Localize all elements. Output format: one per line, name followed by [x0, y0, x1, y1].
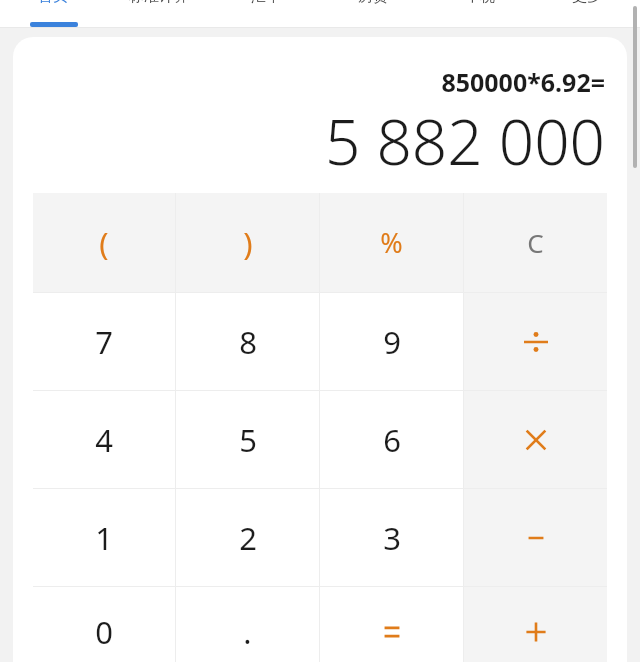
button[interactable]: 汇率 — [212, 0, 319, 28]
staticText: 6 — [383, 419, 401, 461]
button[interactable]: 9 — [320, 293, 463, 390]
staticText: 850000*6.92= — [441, 65, 605, 99]
staticText: 0 — [95, 611, 113, 653]
button[interactable]: ) — [176, 193, 319, 292]
button[interactable]: 标准计算 — [106, 0, 212, 28]
button[interactable]: % — [320, 193, 463, 292]
staticText: 1 — [95, 517, 113, 559]
staticText: 首页 — [38, 0, 68, 6]
staticText: 5 — [239, 419, 257, 461]
staticText: C — [527, 225, 544, 260]
button[interactable]: 2 — [176, 489, 319, 586]
button[interactable]: 1 — [33, 489, 175, 586]
staticText: . — [243, 611, 252, 653]
button[interactable]: Divide — [464, 293, 607, 390]
staticText: 7 — [95, 321, 113, 363]
staticText: 个税 — [465, 0, 495, 6]
button[interactable]: 4 — [33, 391, 175, 488]
button[interactable]: Subtract — [464, 489, 607, 586]
staticText: 标准计算 — [129, 0, 189, 6]
staticText: 8 — [239, 321, 257, 363]
button[interactable]: Equals — [320, 587, 463, 662]
button[interactable]: 7 — [33, 293, 175, 390]
button[interactable]: ( — [33, 193, 175, 292]
button[interactable]: . — [176, 587, 319, 662]
staticText: 汇率 — [251, 0, 281, 6]
button[interactable]: 8 — [176, 293, 319, 390]
staticText: ( — [99, 222, 109, 264]
staticText: % — [380, 224, 403, 261]
button[interactable]: C — [464, 193, 607, 292]
button[interactable]: 首页 — [0, 0, 106, 28]
staticText: 4 — [95, 419, 113, 461]
staticText: 9 — [383, 321, 401, 363]
staticText: 5 882 000 — [324, 99, 605, 183]
staticText: ) — [243, 222, 253, 264]
button[interactable]: 房贷 — [319, 0, 426, 28]
button[interactable]: 0 — [33, 587, 175, 662]
staticText: 房贷 — [358, 0, 388, 6]
staticText: 3 — [383, 517, 401, 559]
button[interactable]: 3 — [320, 489, 463, 586]
button[interactable]: 6 — [320, 391, 463, 488]
button[interactable]: Add — [464, 587, 607, 662]
button[interactable]: Multiply — [464, 391, 607, 488]
staticText: 更多 — [572, 0, 602, 6]
staticText: 2 — [239, 517, 257, 559]
button[interactable]: 5 — [176, 391, 319, 488]
button[interactable]: 个税 — [426, 0, 533, 28]
button[interactable]: 更多 — [533, 0, 640, 28]
